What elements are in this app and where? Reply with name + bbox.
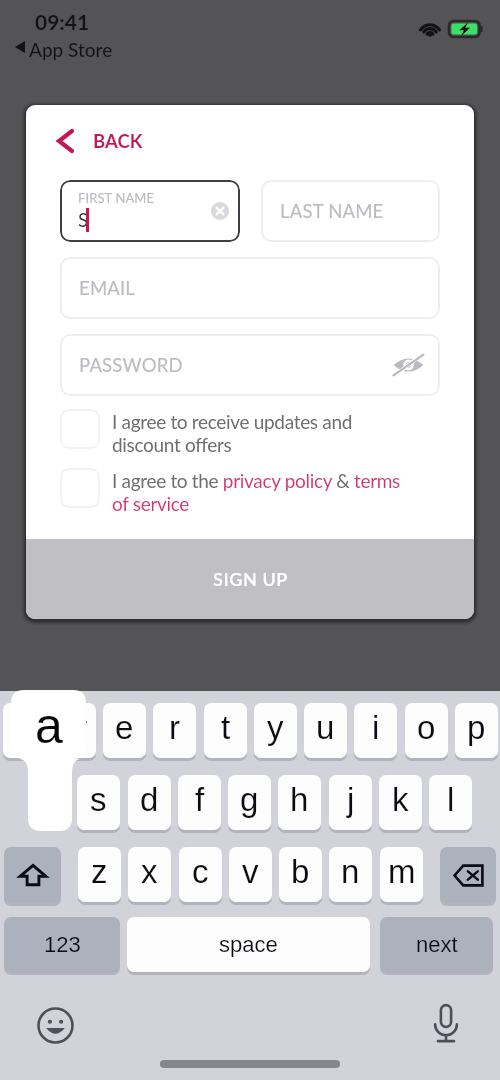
button[interactable]: g xyxy=(228,775,271,830)
button[interactable]: FIRST NAME xyxy=(60,180,240,242)
staticText: e xyxy=(115,709,134,746)
button[interactable]: x xyxy=(128,847,171,902)
staticText: l xyxy=(447,781,455,818)
button[interactable]: Next xyxy=(380,917,493,972)
staticText: d xyxy=(140,781,159,818)
staticText: c xyxy=(192,853,209,890)
button[interactable]: Show password xyxy=(393,355,424,375)
button[interactable]: l xyxy=(429,775,472,830)
staticText: i xyxy=(372,709,380,746)
staticText: S xyxy=(78,209,89,231)
button[interactable]: o xyxy=(405,703,448,758)
button[interactable]: EMAIL xyxy=(60,257,440,319)
staticText: space xyxy=(219,932,278,957)
staticText: g xyxy=(240,781,259,818)
button[interactable]: Clear text xyxy=(211,202,229,220)
staticText: I agree to receive updates and discount … xyxy=(112,410,353,456)
staticText: w xyxy=(63,709,87,746)
button[interactable]: k xyxy=(379,775,422,830)
button[interactable]: I agree to receive updates and discount … xyxy=(60,409,440,455)
staticText: a xyxy=(35,698,63,754)
staticText: b xyxy=(291,853,310,890)
staticText: 123 xyxy=(44,932,81,957)
button[interactable]: e xyxy=(103,703,146,758)
staticText: k xyxy=(392,781,409,818)
button[interactable]: s xyxy=(77,775,120,830)
button[interactable]: Dictation xyxy=(429,1003,463,1045)
staticText: y xyxy=(267,709,284,746)
staticText: v xyxy=(242,853,259,890)
staticText: App Store xyxy=(29,38,113,61)
staticText: t xyxy=(221,709,231,746)
button[interactable]: r xyxy=(153,703,196,758)
button[interactable]: m xyxy=(380,847,423,902)
button[interactable]: f xyxy=(178,775,221,830)
staticText: m xyxy=(388,853,416,890)
staticText: z xyxy=(91,853,108,890)
staticText: p xyxy=(467,709,486,746)
button[interactable]: p xyxy=(455,703,498,758)
button[interactable]: Space xyxy=(127,917,370,972)
staticText: f xyxy=(195,781,205,818)
staticText: o xyxy=(417,709,436,746)
button[interactable]: q xyxy=(3,703,46,758)
button[interactable]: Backspace xyxy=(440,847,496,903)
button[interactable]: Emoji xyxy=(37,1007,74,1044)
staticText: next xyxy=(416,932,458,957)
staticText: n xyxy=(341,853,360,890)
button[interactable]: d xyxy=(128,775,171,830)
button[interactable]: I agree to the privacy policy & terms of… xyxy=(60,468,440,514)
button[interactable]: LAST NAME xyxy=(261,180,440,242)
button[interactable]: v xyxy=(229,847,272,902)
staticText: SIGN UP xyxy=(213,568,288,590)
button[interactable]: h xyxy=(278,775,321,830)
staticText: r xyxy=(169,709,180,746)
staticText: LAST NAME xyxy=(280,200,384,222)
button[interactable]: b xyxy=(279,847,322,902)
button[interactable]: t xyxy=(204,703,247,758)
staticText: s xyxy=(90,781,107,818)
button[interactable]: z xyxy=(78,847,121,902)
staticText: x xyxy=(141,853,158,890)
staticText: FIRST NAME xyxy=(78,190,155,206)
staticText: h xyxy=(290,781,309,818)
staticText: I agree to the privacy policy & terms of… xyxy=(112,469,400,515)
button[interactable]: Shift xyxy=(4,847,61,903)
button[interactable]: Numbers xyxy=(4,917,120,972)
button[interactable]: SIGN UP xyxy=(26,539,474,619)
staticText: u xyxy=(316,709,335,746)
button[interactable]: i xyxy=(354,703,397,758)
staticText: EMAIL xyxy=(79,277,136,299)
button[interactable]: BACK xyxy=(26,105,196,177)
button[interactable]: PASSWORD xyxy=(60,334,440,396)
button[interactable]: j xyxy=(329,775,372,830)
button[interactable]: n xyxy=(329,847,372,902)
staticText: PASSWORD xyxy=(79,354,183,376)
staticText: BACK xyxy=(93,130,143,152)
button[interactable]: y xyxy=(254,703,297,758)
staticText: j xyxy=(347,781,355,818)
button[interactable]: w xyxy=(53,703,96,758)
button[interactable]: u xyxy=(304,703,347,758)
button[interactable]: c xyxy=(179,847,222,902)
staticText: 09:41 xyxy=(35,9,90,34)
